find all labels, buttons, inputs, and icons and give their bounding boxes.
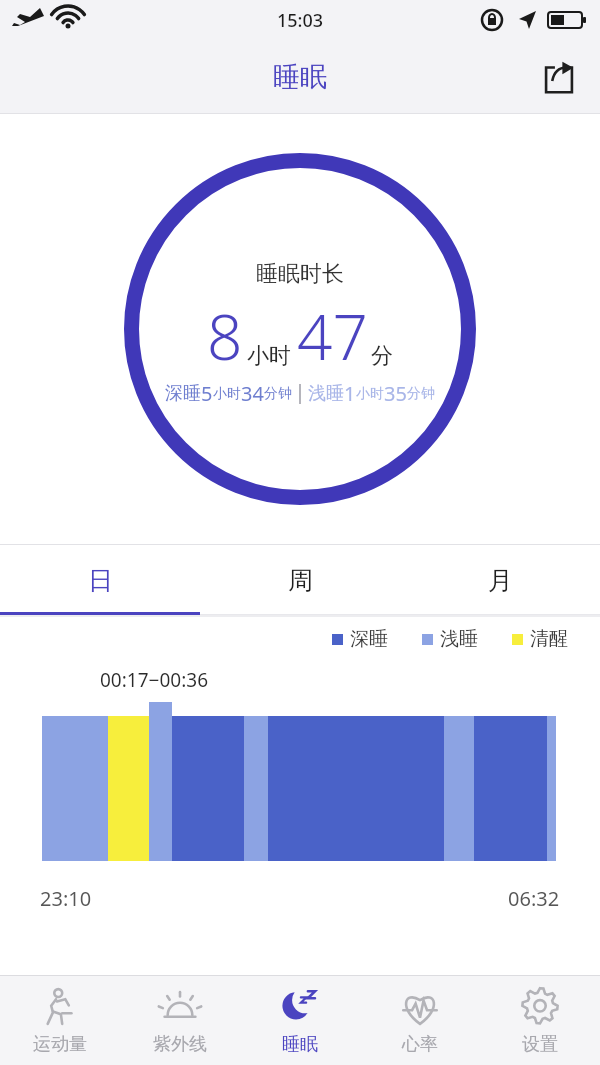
- staticText: 睡眠: [282, 1033, 318, 1056]
- button[interactable]: 设置: [480, 976, 600, 1065]
- button[interactable]: 运动量: [0, 976, 120, 1065]
- staticText: 月: [488, 565, 513, 596]
- button[interactable]: 月: [400, 545, 600, 615]
- staticText: 周: [288, 565, 313, 596]
- button[interactable]: 心率: [360, 976, 480, 1065]
- staticText: 清醒: [530, 627, 568, 651]
- staticText: 睡眠时长: [256, 260, 344, 288]
- button[interactable]: 周: [200, 545, 400, 615]
- staticText: 小时: [247, 342, 291, 370]
- staticText: 06:32: [508, 885, 560, 912]
- staticText: 47: [297, 294, 368, 378]
- staticText: 浅睡: [308, 382, 344, 405]
- staticText: 分钟: [264, 385, 292, 403]
- button[interactable]: 日: [0, 545, 200, 615]
- staticText: 浅睡: [440, 627, 478, 651]
- staticText: 5: [201, 380, 213, 407]
- staticText: 1: [344, 380, 356, 407]
- staticText: 日: [88, 565, 113, 596]
- staticText: 小时: [356, 385, 384, 403]
- staticText: 23:10: [40, 885, 92, 912]
- staticText: 小时: [213, 385, 241, 403]
- staticText: 睡眠: [273, 60, 327, 94]
- button[interactable]: 睡眠: [240, 976, 360, 1065]
- staticText: 34: [241, 380, 264, 407]
- staticText: 设置: [522, 1033, 558, 1056]
- staticText: 35: [384, 380, 407, 407]
- staticText: 分: [371, 342, 393, 370]
- button[interactable]: 紫外线: [120, 976, 240, 1065]
- staticText: 00:17−00:36: [100, 667, 208, 693]
- staticText: 8: [207, 294, 243, 378]
- staticText: 运动量: [33, 1033, 87, 1056]
- staticText: 深睡: [350, 627, 388, 651]
- staticText: 心率: [402, 1033, 438, 1056]
- staticText: 深睡: [165, 382, 201, 405]
- staticText: 15:03: [277, 8, 324, 33]
- staticText: 紫外线: [153, 1033, 207, 1056]
- button[interactable]: Share: [532, 50, 586, 104]
- staticText: 分钟: [407, 385, 435, 403]
